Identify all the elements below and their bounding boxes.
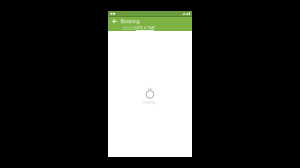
staticText: Booking [121,18,140,24]
staticText: Loading… [142,100,158,104]
staticText: DATE & TIME [135,26,155,30]
button[interactable]: Back [112,16,117,26]
button[interactable]: DATE & TIME [136,26,154,31]
button[interactable]: SERVICE [122,26,136,31]
staticText: SERVICE [122,26,135,30]
